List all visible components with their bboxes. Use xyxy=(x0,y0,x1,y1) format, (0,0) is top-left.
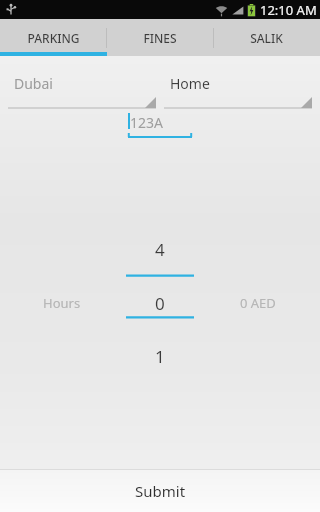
staticText: Hours xyxy=(43,294,81,312)
staticText: Dubai xyxy=(14,74,53,93)
staticText: SALIK xyxy=(250,30,283,46)
staticText: PARKING xyxy=(27,30,80,46)
button[interactable]: Select zone xyxy=(164,70,312,110)
button[interactable]: FINES xyxy=(106,19,213,56)
button[interactable]: PARKING xyxy=(0,19,106,56)
button[interactable]: 123A xyxy=(128,112,192,140)
button[interactable]: Select emirate xyxy=(8,70,156,110)
staticText: 4 xyxy=(155,238,165,261)
button[interactable]: SALIK xyxy=(213,19,320,56)
staticText: Home xyxy=(170,74,210,93)
staticText: 1 xyxy=(155,345,165,368)
staticText: 12:10 AM xyxy=(260,1,317,19)
staticText: Submit xyxy=(135,481,186,501)
staticText: 0 xyxy=(155,292,165,315)
staticText: 0 AED xyxy=(240,294,276,312)
button[interactable]: Hours picker xyxy=(124,238,196,368)
button[interactable]: Submit xyxy=(0,470,320,512)
staticText: 123A xyxy=(130,113,163,132)
staticText: FINES xyxy=(143,30,177,46)
